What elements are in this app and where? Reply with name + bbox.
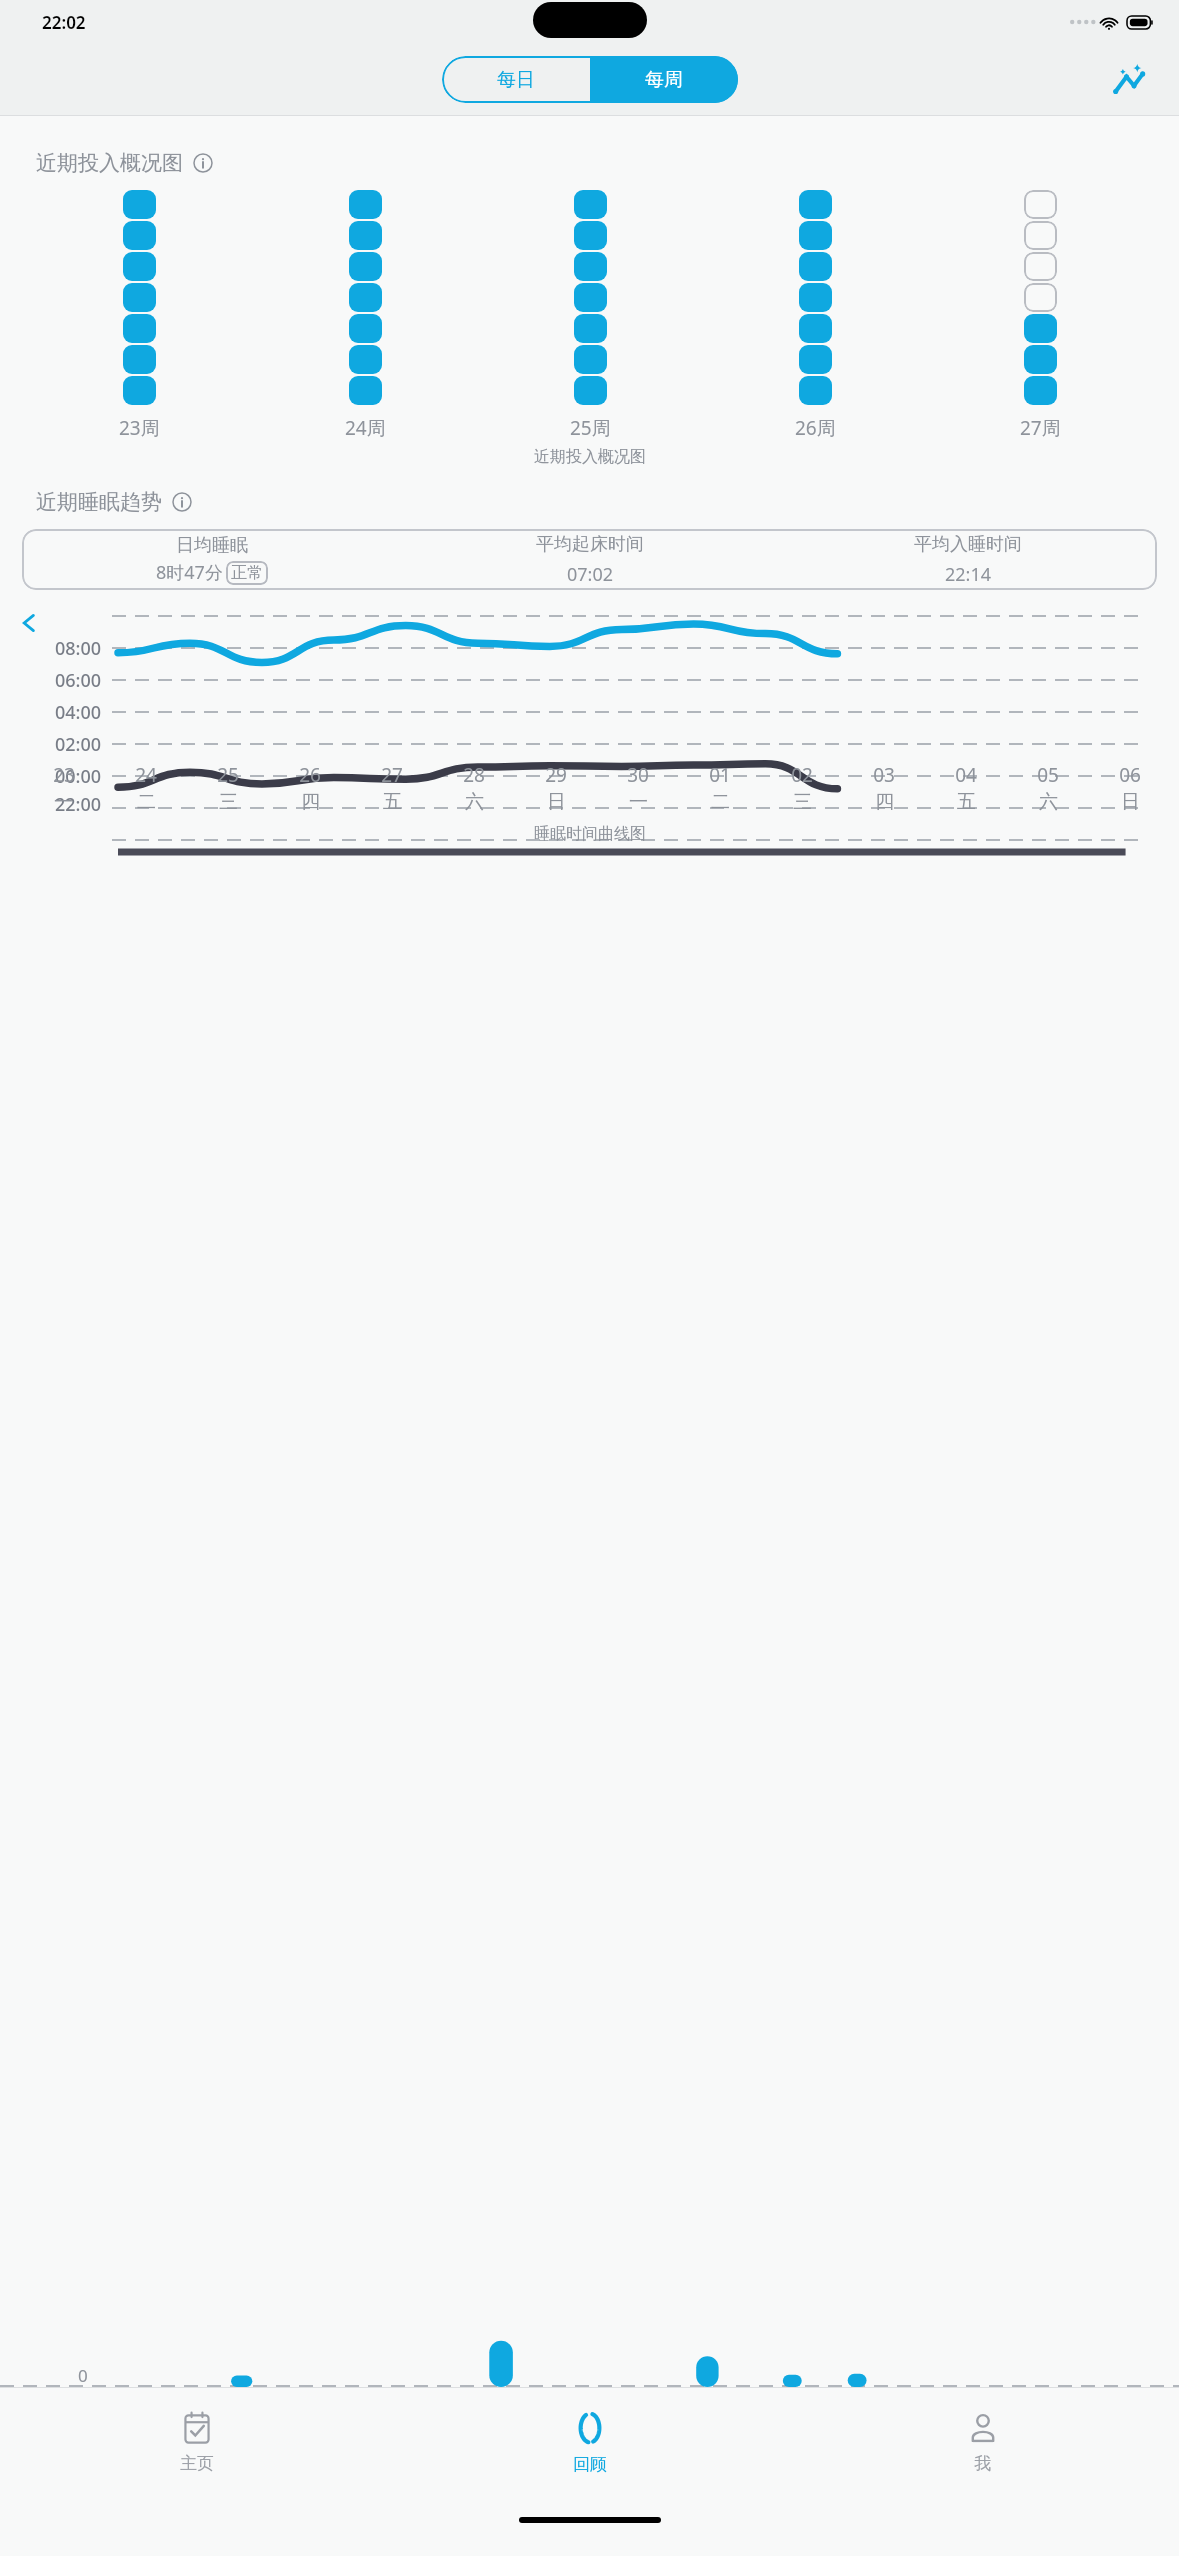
staticText: 每日	[497, 68, 535, 92]
staticText: 22:02	[42, 11, 86, 34]
staticText: 近期睡眠趋势	[36, 489, 162, 515]
staticText: 平均入睡时间	[914, 533, 1022, 556]
staticText: 01	[709, 762, 731, 788]
staticText: 二	[137, 790, 156, 814]
staticText: 02:00	[55, 732, 102, 757]
staticText: 五	[957, 790, 976, 814]
button[interactable]: Previous	[12, 606, 46, 640]
staticText: 00:00	[55, 764, 102, 789]
staticText: 04:00	[55, 700, 102, 725]
staticText: 30	[627, 762, 649, 788]
staticText: 五	[383, 790, 402, 814]
staticText: 8时47分	[156, 560, 223, 585]
staticText: 03	[873, 762, 895, 788]
staticText: 四	[875, 790, 894, 814]
staticText: 05	[1037, 762, 1059, 788]
staticText: 02	[791, 762, 813, 788]
staticText: 日	[547, 790, 566, 814]
staticText: 一	[629, 790, 648, 814]
staticText: 三	[793, 790, 812, 814]
staticText: 22:14	[945, 562, 992, 587]
button[interactable]: 回顾	[393, 2388, 786, 2496]
staticText: 近期投入概况图	[36, 150, 183, 176]
staticText: 四	[301, 790, 320, 814]
button[interactable]: 近期睡眠趋势	[36, 489, 1179, 515]
staticText: 25	[217, 762, 239, 788]
staticText: 23周	[119, 415, 160, 441]
staticText: 日均睡眠	[176, 534, 248, 557]
staticText: 25周	[570, 415, 611, 441]
button[interactable]: Insights	[1107, 58, 1151, 102]
button[interactable]: 日均睡眠	[22, 529, 1157, 590]
staticText: 29	[545, 762, 567, 788]
staticText: 06	[1119, 762, 1141, 788]
button[interactable]: 近期投入概况图	[36, 150, 1179, 176]
staticText: 正常	[231, 563, 263, 583]
staticText: 六	[465, 790, 484, 814]
staticText: 二	[711, 790, 730, 814]
staticText: 回顾	[573, 2454, 607, 2475]
staticText: 24	[135, 762, 157, 788]
staticText: 三	[219, 790, 238, 814]
staticText: 一	[54, 790, 73, 814]
staticText: 27	[381, 762, 403, 788]
staticText: 平均起床时间	[536, 533, 644, 556]
button[interactable]: 每周	[590, 56, 738, 103]
staticText: 24周	[345, 415, 386, 441]
staticText: 27周	[1020, 415, 1061, 441]
staticText: 六	[1039, 790, 1058, 814]
staticText: 睡眠时间曲线图	[534, 824, 646, 844]
button[interactable]: 主页	[0, 2388, 393, 2496]
staticText: 07:02	[567, 562, 614, 587]
staticText: 04	[955, 762, 977, 788]
staticText: 06:00	[55, 668, 102, 693]
staticText: 0	[78, 2364, 88, 2387]
staticText: 23	[53, 762, 75, 788]
staticText: 我	[974, 2453, 991, 2474]
staticText: 08:00	[55, 636, 102, 661]
staticText: 主页	[180, 2453, 214, 2474]
staticText: 28	[463, 762, 485, 788]
button[interactable]: 每日	[442, 56, 590, 103]
staticText: 22:00	[55, 792, 102, 814]
staticText: 26	[299, 762, 321, 788]
staticText: 26周	[795, 415, 836, 441]
button[interactable]: 我	[786, 2388, 1179, 2496]
staticText: 每周	[645, 68, 683, 92]
staticText: 近期投入概况图	[534, 447, 646, 467]
staticText: 日	[1121, 790, 1140, 814]
